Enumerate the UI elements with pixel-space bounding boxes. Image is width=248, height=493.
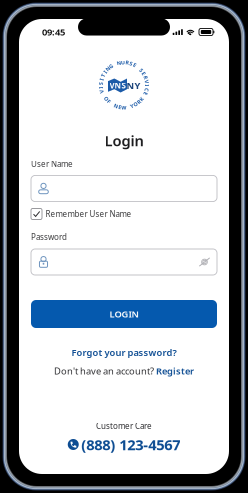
staticText: S [129, 60, 132, 67]
staticText: W [121, 104, 126, 111]
staticText: O [133, 101, 137, 108]
staticText: VNS [109, 80, 125, 91]
staticText: E [144, 90, 147, 97]
staticText: F [107, 98, 110, 105]
staticText: S [99, 80, 102, 87]
staticText: Customer Care [96, 421, 152, 431]
staticText: K [139, 95, 143, 102]
staticText: T [101, 72, 104, 79]
staticText: O [104, 95, 108, 102]
button[interactable]: Register [156, 365, 194, 377]
staticText: Don't have an account? [54, 365, 156, 377]
staticText: (888) 123-4567 [81, 435, 180, 454]
staticText: 09:45 [42, 26, 65, 38]
button[interactable]: (888) 123-4567 [19, 437, 229, 452]
staticText: E [118, 103, 121, 111]
button[interactable]: Show password [198, 255, 211, 268]
staticText: E [133, 61, 136, 69]
staticText: I [100, 84, 102, 91]
staticText: Remember User Name [45, 209, 131, 219]
button[interactable]: Remember User Name [31, 208, 217, 220]
staticText: C [145, 86, 148, 93]
staticText: G [109, 63, 113, 70]
staticText: S [140, 67, 143, 74]
staticText: Forgot your password? [71, 346, 176, 359]
staticText: N [117, 59, 121, 66]
staticText: E [142, 70, 145, 77]
button[interactable]: LOGIN [31, 300, 217, 328]
staticText: Login [104, 131, 143, 150]
staticText: User Name [31, 159, 73, 169]
staticText: Y [130, 102, 133, 110]
staticText: I [146, 82, 148, 89]
button[interactable]: Forgot your password? [31, 347, 217, 358]
staticText: R [125, 59, 128, 66]
staticText: I [104, 68, 106, 76]
staticText: N [114, 102, 118, 109]
staticText: V [100, 88, 103, 95]
staticText: V [145, 78, 148, 85]
staticText: R [144, 74, 147, 81]
staticText: Password [31, 232, 67, 242]
staticText: R [137, 98, 140, 105]
staticText: LOGIN [109, 308, 138, 320]
staticText: Register [156, 365, 194, 377]
staticText: U [121, 59, 125, 66]
staticText: N [106, 65, 110, 72]
staticText: NY [126, 79, 140, 92]
staticText: I [101, 76, 103, 83]
